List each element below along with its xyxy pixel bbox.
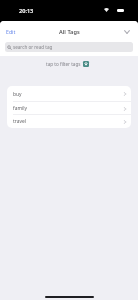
staticText: tap to filter tags: [46, 61, 81, 67]
button[interactable]: search or read tag: [5, 42, 133, 52]
button[interactable]: buy: [7, 86, 131, 102]
button[interactable]: Edit: [4, 25, 18, 38]
staticText: All Tags: [59, 28, 80, 36]
staticText: buy: [13, 91, 22, 98]
staticText: family: [13, 105, 28, 112]
staticText: search or read tag: [13, 44, 53, 50]
staticText: travel: [13, 118, 26, 125]
button[interactable]: Collapse: [121, 26, 133, 38]
button[interactable]: family: [7, 102, 131, 115]
staticText: 20:13: [19, 7, 34, 15]
button[interactable]: travel: [7, 115, 131, 128]
staticText: Edit: [6, 28, 16, 35]
